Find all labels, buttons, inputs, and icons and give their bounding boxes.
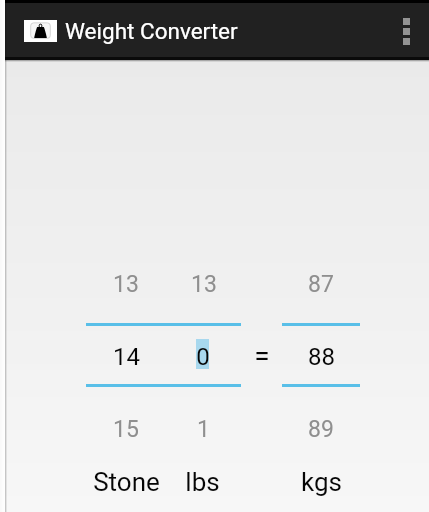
button[interactable]: 87 [284,264,358,304]
staticText: 0 [196,343,210,371]
button[interactable]: 89 [284,409,358,449]
staticText: = [254,339,270,372]
button[interactable]: 13 [93,264,159,304]
button[interactable]: 88 [284,337,358,377]
button[interactable]: 14 [93,337,159,377]
staticText: 13 [113,271,139,298]
staticText: 87 [308,271,334,298]
button[interactable]: 1 [177,409,229,449]
staticText: 15 [113,416,139,443]
button[interactable]: More options [383,8,429,54]
staticText: kgs [301,467,342,497]
staticText: Weight Converter [65,18,238,44]
button[interactable]: 13 [178,264,230,304]
staticText: 14 [113,343,140,371]
button[interactable]: 0 [177,337,229,377]
button[interactable]: 15 [93,409,159,449]
staticText: 13 [191,271,217,298]
staticText: 1 [197,416,210,443]
staticText: 89 [308,416,334,443]
staticText: lbs [185,467,220,497]
staticText: 88 [308,343,335,371]
staticText: Stone [93,467,160,497]
